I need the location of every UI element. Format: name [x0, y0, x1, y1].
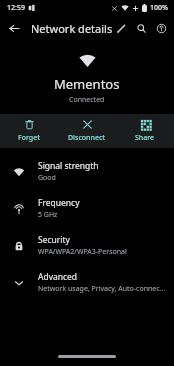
staticText: Signal strength — [38, 160, 99, 172]
staticText: Mementos — [54, 75, 120, 93]
staticText: Network details — [31, 21, 113, 36]
button[interactable]: Frequency — [0, 190, 174, 227]
button[interactable]: Search — [131, 18, 151, 38]
button[interactable]: Signal strength — [0, 153, 174, 190]
button[interactable]: Edit — [111, 18, 131, 38]
staticText: Network usage, Privacy, Auto-connect, Ad… — [38, 284, 166, 294]
staticText: Good — [38, 173, 56, 183]
button[interactable]: Disconnect — [58, 114, 116, 148]
staticText: Connected — [69, 95, 105, 105]
button[interactable]: Back — [4, 18, 24, 38]
button[interactable]: Advanced — [0, 264, 174, 301]
staticText: Advanced — [38, 271, 78, 283]
staticText: Security — [38, 234, 70, 246]
staticText: WPA/WPA2/WPA3-Personal — [38, 247, 127, 257]
staticText: 5 GHz — [38, 210, 58, 220]
button[interactable]: Share — [116, 114, 174, 148]
staticText: Share — [135, 133, 155, 143]
staticText: 100% — [150, 3, 168, 13]
staticText: Frequency — [38, 197, 80, 209]
button[interactable]: Help — [151, 18, 171, 38]
button[interactable]: Forget — [0, 114, 58, 148]
staticText: Forget — [18, 133, 40, 143]
staticText: 12:59 — [7, 3, 25, 13]
staticText: Disconnect — [68, 133, 106, 143]
button[interactable]: Security — [0, 227, 174, 264]
